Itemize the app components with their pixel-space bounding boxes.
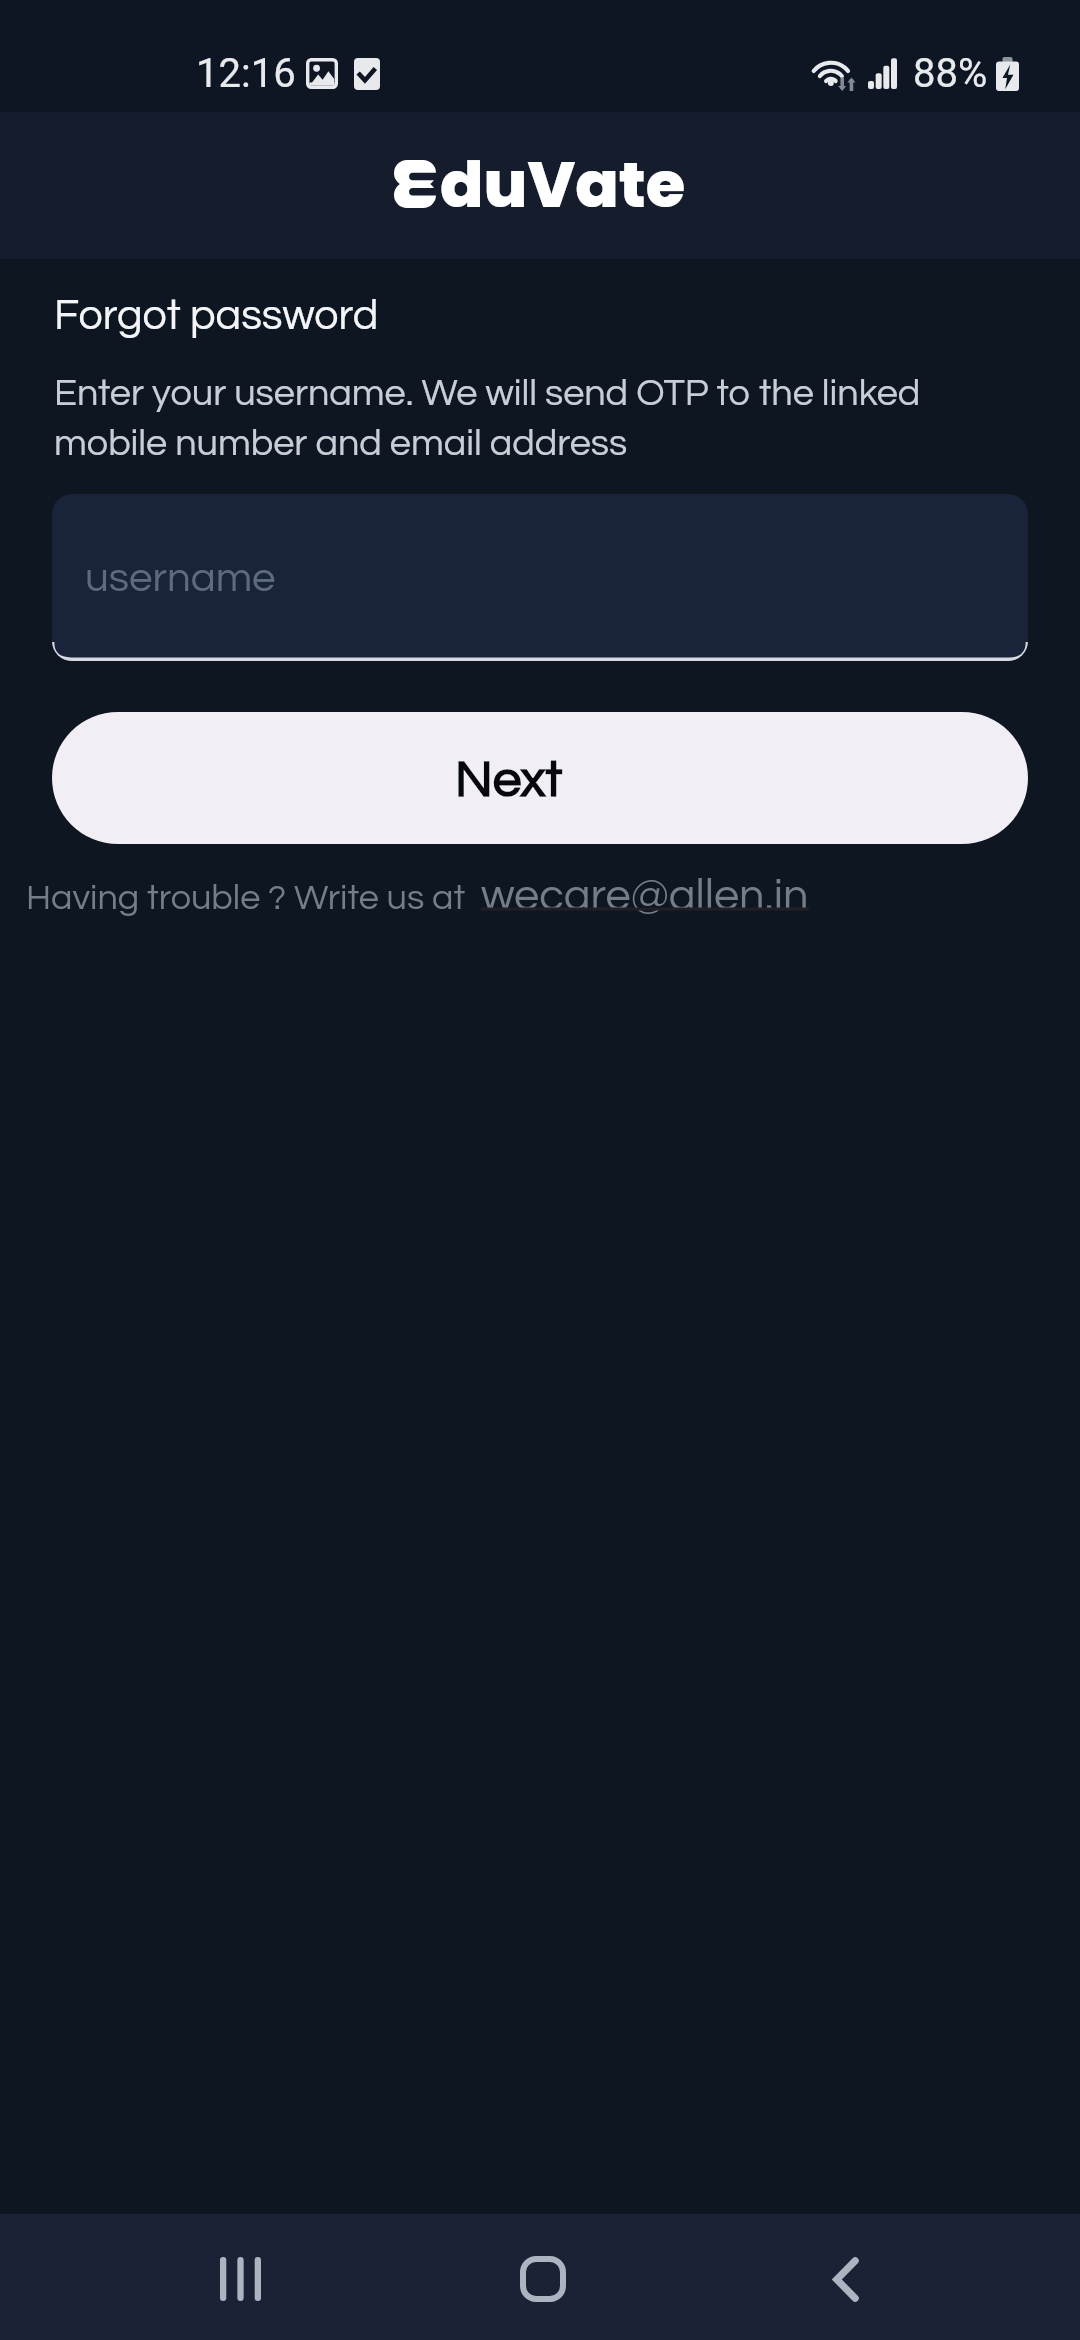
- staticText: duVate: [440, 140, 686, 230]
- staticText: 12:16: [196, 50, 296, 97]
- staticText: Enter your username. We will send OTP to…: [54, 374, 960, 463]
- button[interactable]: username: [52, 494, 1028, 661]
- staticText: 88%: [913, 50, 988, 97]
- button[interactable]: Recent apps: [180, 2219, 300, 2339]
- button[interactable]: Home: [483, 2219, 603, 2339]
- staticText: Having trouble ? Write us at: [26, 879, 466, 916]
- button[interactable]: Back: [786, 2219, 906, 2339]
- staticText: username: [85, 557, 276, 600]
- staticText: wecare@allen.in: [481, 873, 809, 919]
- button[interactable]: wecare@allen.in: [481, 873, 809, 919]
- staticText: Next: [455, 754, 563, 807]
- staticText: Forgot password: [54, 294, 379, 338]
- button[interactable]: Next: [52, 712, 1028, 844]
